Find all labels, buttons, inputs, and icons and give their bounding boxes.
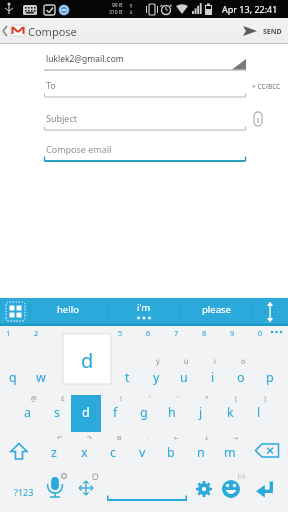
- button[interactable]: i'm: [114, 299, 174, 315]
- button[interactable]: j: [187, 399, 215, 425]
- staticText: ↷: [87, 434, 93, 441]
- staticText: (:-): [238, 472, 245, 479]
- button[interactable]: + CC/BCC: [249, 81, 283, 91]
- button[interactable]: [254, 436, 284, 464]
- button[interactable]: u: [170, 364, 198, 390]
- staticText: ý: [156, 357, 160, 367]
- staticText: 99 B: [112, 2, 123, 9]
- button[interactable]: please: [186, 299, 246, 319]
- staticText: l: [257, 404, 261, 421]
- staticText: d: [82, 404, 90, 421]
- button[interactable]: [4, 436, 32, 464]
- button[interactable]: [100, 475, 194, 505]
- button[interactable]: z: [40, 439, 68, 465]
- button[interactable]: t: [113, 364, 141, 390]
- staticText: m: [224, 444, 236, 461]
- button[interactable]: x: [70, 439, 98, 465]
- button[interactable]: ?123: [8, 484, 40, 499]
- button[interactable]: e: [56, 364, 84, 390]
- staticText: 8: [202, 328, 207, 338]
- staticText: t: [125, 369, 130, 386]
- staticText: ò: [241, 357, 246, 367]
- button[interactable]: [250, 475, 282, 505]
- staticText: w: [36, 369, 46, 386]
- staticText: (: [235, 394, 237, 403]
- staticText: c: [110, 444, 117, 461]
- button[interactable]: 7: [166, 326, 186, 339]
- button[interactable]: p: [256, 364, 284, 390]
- staticText: 310 B: [109, 9, 123, 16]
- button[interactable]: [194, 475, 216, 505]
- button[interactable]: o: [227, 364, 255, 390]
- staticText: ^: [205, 394, 209, 403]
- staticText: ': [177, 394, 179, 403]
- button[interactable]: b: [157, 439, 185, 465]
- button[interactable]: s: [43, 399, 71, 425]
- button[interactable]: i: [199, 364, 227, 390]
- staticText: Apr 13, 22:41: [222, 3, 278, 15]
- button[interactable]: 2: [26, 326, 46, 339]
- button[interactable]: [42, 475, 70, 505]
- button[interactable]: 5: [110, 326, 130, 339]
- button[interactable]: [44, 76, 246, 97]
- staticText: f: [113, 404, 118, 421]
- staticText: !: [120, 394, 122, 403]
- button[interactable]: g: [130, 399, 158, 425]
- staticText: £: [61, 394, 65, 403]
- button[interactable]: 9: [222, 326, 242, 339]
- button[interactable]: [250, 108, 268, 130]
- staticText: ?123: [14, 486, 34, 498]
- button[interactable]: [236, 18, 288, 44]
- button[interactable]: f: [101, 399, 129, 425]
- button[interactable]: [44, 109, 246, 130]
- staticText: Compose: [28, 24, 77, 39]
- staticText: →: [233, 434, 239, 441]
- staticText: 2: [34, 328, 39, 338]
- staticText: r: [95, 369, 101, 386]
- button[interactable]: r: [84, 364, 112, 390]
- button[interactable]: 0: [250, 326, 270, 339]
- button[interactable]: l: [245, 399, 273, 425]
- button[interactable]: 6: [138, 326, 158, 339]
- staticText: To: [46, 79, 56, 91]
- staticText: Compose email: [46, 143, 112, 155]
- staticText: hello: [57, 303, 79, 316]
- button[interactable]: q: [0, 364, 27, 390]
- button[interactable]: [74, 475, 100, 505]
- staticText: u: [180, 369, 188, 386]
- button[interactable]: c: [99, 439, 127, 465]
- staticText: 7: [174, 328, 179, 338]
- staticText: + CC/BCC: [252, 82, 281, 91]
- button[interactable]: [255, 298, 288, 325]
- button[interactable]: 1: [0, 326, 18, 339]
- button[interactable]: n: [187, 439, 215, 465]
- button[interactable]: a: [14, 399, 42, 425]
- staticText: k: [227, 404, 234, 421]
- staticText: ←: [174, 434, 180, 441]
- button[interactable]: h: [158, 399, 186, 425]
- staticText: q: [9, 369, 17, 386]
- staticText: g: [140, 404, 148, 421]
- button[interactable]: k: [216, 399, 244, 425]
- button[interactable]: [3, 298, 30, 325]
- button[interactable]: 8: [194, 326, 214, 339]
- staticText: ↶: [57, 434, 63, 441]
- staticText: n: [197, 444, 205, 461]
- staticText: p: [266, 369, 274, 386]
- button[interactable]: w: [27, 364, 55, 390]
- button[interactable]: m: [216, 439, 244, 465]
- staticText: 6: [146, 328, 151, 338]
- staticText: a: [24, 404, 32, 421]
- button[interactable]: d: [72, 399, 100, 425]
- button[interactable]: [44, 140, 246, 161]
- staticText: ì: [214, 357, 216, 367]
- staticText: d: [81, 347, 94, 374]
- staticText: x: [81, 444, 88, 461]
- button[interactable]: [44, 50, 246, 70]
- button[interactable]: y: [142, 364, 170, 390]
- button[interactable]: hello: [38, 299, 98, 319]
- staticText: please: [202, 303, 231, 316]
- button[interactable]: [219, 475, 244, 505]
- button[interactable]: v: [128, 439, 156, 465]
- staticText: SEND: [263, 27, 282, 37]
